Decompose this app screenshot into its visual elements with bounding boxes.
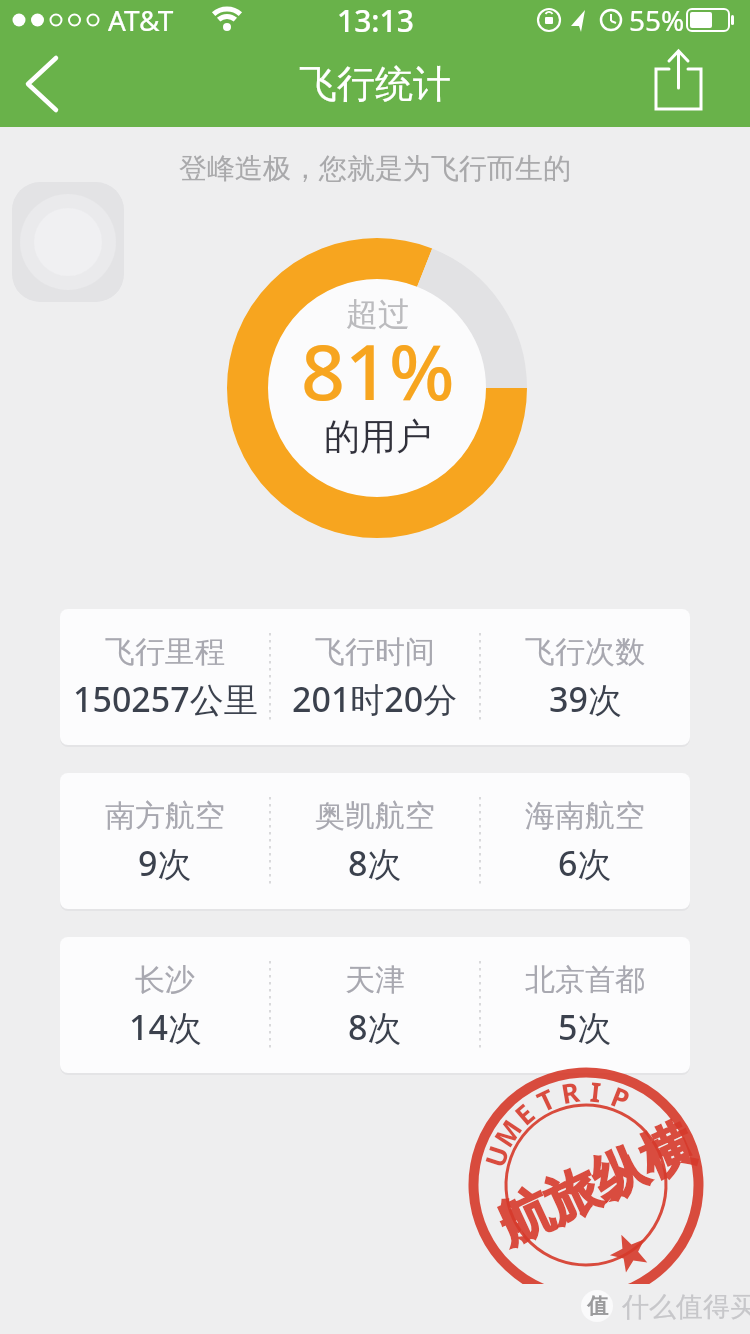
staticText: 飞行统计 (299, 60, 451, 108)
staticText: 9次 (138, 840, 192, 886)
staticText: 39次 (549, 676, 622, 722)
staticText: 13:13 (337, 0, 414, 40)
staticText: 飞行次数 (525, 633, 645, 671)
staticText: 长沙 (135, 961, 195, 999)
staticText: 150257公里 (73, 676, 258, 722)
staticText: 超过 (346, 294, 410, 334)
staticText: 81% (301, 318, 455, 423)
staticText: 值 (587, 1293, 608, 1319)
staticText: 北京首都 (525, 961, 645, 999)
button[interactable] (640, 40, 720, 127)
button[interactable] (0, 40, 80, 127)
staticText: 天津 (345, 961, 405, 999)
staticText: 14次 (129, 1004, 202, 1050)
staticText: 海南航空 (525, 797, 645, 835)
staticText: 8次 (348, 1004, 402, 1050)
staticText: 55% (629, 1, 685, 39)
staticText: 登峰造极，您就是为飞行而生的 (179, 151, 571, 186)
staticText: 奥凯航空 (315, 797, 435, 835)
staticText: 201时20分 (292, 676, 458, 722)
staticText: 8次 (348, 840, 402, 886)
staticText: 的用户 (324, 414, 432, 459)
staticText: 飞行里程 (105, 633, 225, 671)
staticText: 什么值得买 (622, 1290, 750, 1322)
staticText: 飞行时间 (315, 633, 435, 671)
staticText: 6次 (558, 840, 612, 886)
button[interactable]: 南方航空 (60, 773, 690, 909)
staticText: 南方航空 (105, 797, 225, 835)
staticText: 5次 (558, 1004, 612, 1050)
staticText: AT&T (108, 1, 174, 39)
button[interactable]: 飞行里程 (60, 609, 690, 745)
button[interactable]: 长沙 (60, 937, 690, 1073)
